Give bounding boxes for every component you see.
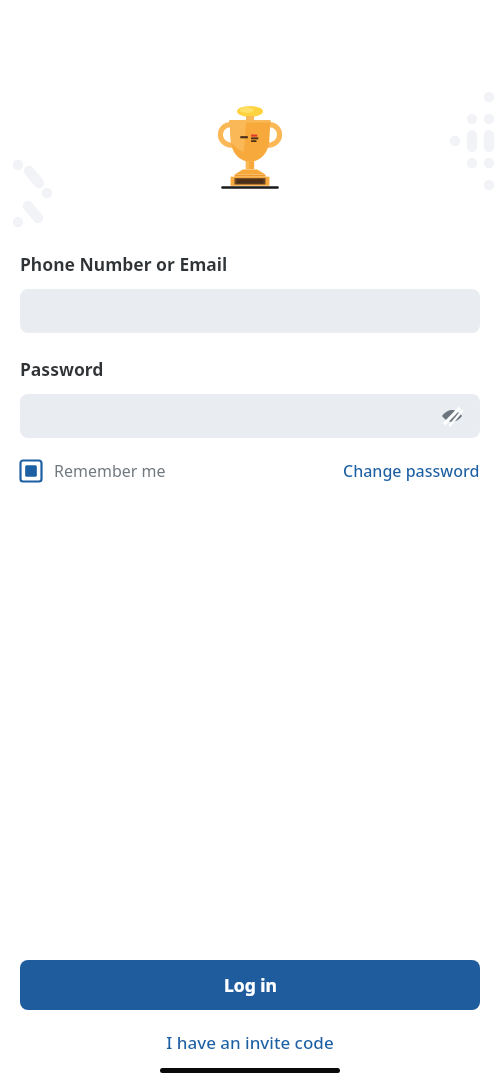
- staticText: I have an invite code: [166, 1031, 334, 1054]
- staticText: Phone Number or Email: [20, 252, 228, 276]
- staticText: Remember me: [54, 460, 166, 482]
- button[interactable]: I have an invite code: [156, 1029, 344, 1056]
- button[interactable]: Log in: [20, 960, 480, 1010]
- button[interactable]: Remember me: [20, 460, 166, 482]
- button[interactable]: Show password: [20, 394, 480, 438]
- staticText: Change password: [343, 460, 480, 482]
- button[interactable]: Change password: [343, 460, 480, 482]
- staticText: Password: [20, 357, 104, 381]
- button[interactable]: Show password: [438, 402, 466, 430]
- staticText: Log in: [224, 973, 277, 997]
